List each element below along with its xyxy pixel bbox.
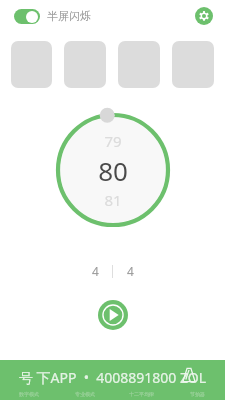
staticText: 十二平均律 bbox=[129, 391, 154, 397]
staticText: 节拍器 bbox=[190, 391, 205, 397]
staticText: 80 bbox=[98, 153, 128, 188]
button[interactable]: Settings bbox=[195, 7, 213, 25]
button[interactable]: 十二平均律 bbox=[113, 391, 169, 397]
button[interactable]: Half screen flash toggle bbox=[14, 9, 40, 24]
staticText: 数字模式 bbox=[19, 391, 39, 397]
staticText: 4 bbox=[92, 263, 99, 279]
button[interactable]: Preset slot bbox=[64, 41, 106, 88]
staticText: 专业模式 bbox=[75, 391, 95, 397]
staticText: 81 bbox=[104, 190, 122, 210]
button[interactable]: 专业模式 bbox=[57, 391, 113, 397]
button[interactable]: Note value 4 bbox=[113, 260, 147, 282]
staticText: 号 下APP • 4008891800 ZOL bbox=[0, 368, 225, 387]
staticText: 4 bbox=[127, 263, 134, 279]
button[interactable]: 数字模式 bbox=[0, 391, 57, 397]
button[interactable]: Preset slot bbox=[172, 41, 214, 88]
button[interactable]: 节拍器 bbox=[169, 391, 225, 397]
button[interactable]: Preset slot bbox=[118, 41, 160, 88]
button[interactable]: Preset slot bbox=[11, 41, 52, 88]
button[interactable]: Play bbox=[98, 300, 128, 330]
staticText: 半屏闪烁 bbox=[47, 9, 91, 23]
button[interactable]: Beats per measure 4 bbox=[78, 260, 112, 282]
staticText: 79 bbox=[104, 131, 122, 151]
button[interactable]: Tempo dial 80 BPM bbox=[52, 109, 174, 231]
